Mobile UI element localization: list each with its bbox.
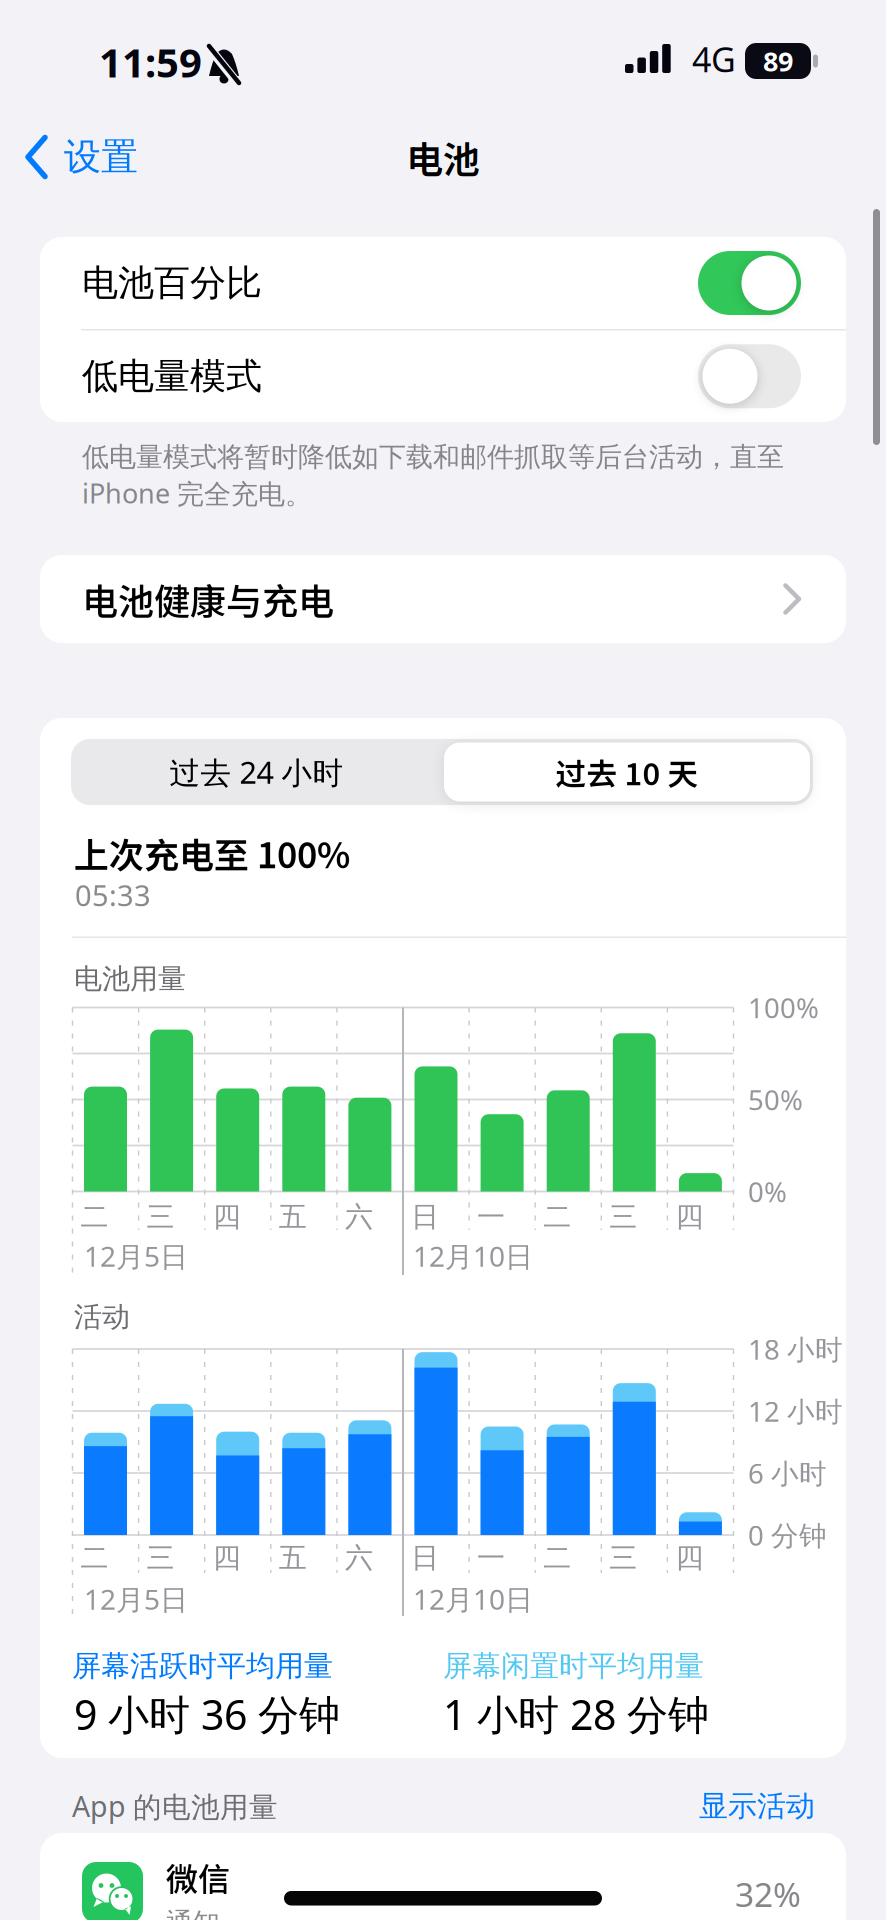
staticText: 四 [675,1541,703,1575]
staticText: iPhone 完全充电。 [82,475,312,511]
staticText: 日 [411,1541,439,1575]
staticText: 6 小时 [748,1455,827,1491]
staticText: 活动 [74,1300,130,1334]
staticText: 12月10日 [413,1580,533,1618]
staticText: 屏幕闲置时平均用量 [443,1648,704,1684]
staticText: 过去 24 小时 [169,752,343,792]
button[interactable]: 过去 10 天 [444,742,810,801]
staticText: 1 小时 28 分钟 [443,1687,709,1741]
staticText: 低电量模式将暂时降低如下载和邮件抓取等后台活动，直至 [82,440,784,474]
staticText: 12月5日 [84,1237,188,1275]
button[interactable]: 设置 [25,133,138,181]
staticText: 89 [763,43,793,79]
staticText: 日 [411,1200,439,1234]
staticText: 32% [735,1872,801,1916]
staticText: App 的电池用量 [72,1787,278,1825]
staticText: 三 [609,1541,637,1575]
staticText: 电池百分比 [82,261,262,305]
staticText: 屏幕活跃时平均用量 [72,1648,333,1684]
staticText: 二 [80,1200,108,1234]
staticText: 9 小时 36 分钟 [74,1687,340,1741]
staticText: 0% [748,1173,787,1210]
staticText: 二 [80,1541,108,1575]
staticText: 六 [345,1200,373,1234]
button[interactable]: 微信 [40,1833,846,1920]
button[interactable]: 电池健康与充电 [40,555,846,643]
staticText: 0 分钟 [748,1517,827,1553]
staticText: 微信 [166,1854,230,1900]
staticText: 上次充电至 100% [74,828,350,878]
staticText: 通知 [166,1906,220,1920]
staticText: 50% [748,1081,803,1118]
staticText: 三 [147,1541,175,1575]
button[interactable]: 电池百分比 [40,237,846,329]
staticText: 一 [477,1200,505,1234]
staticText: 六 [345,1541,373,1575]
staticText: 11:59 [99,35,202,88]
staticText: 四 [675,1200,703,1234]
staticText: 电池健康与充电 [82,574,334,624]
staticText: 4G [692,36,736,82]
staticText: 二 [543,1200,571,1234]
staticText: 100% [748,989,819,1026]
staticText: 一 [477,1541,505,1575]
staticText: 05:33 [75,876,151,914]
staticText: 显示活动 [699,1788,815,1824]
staticText: 12月5日 [84,1580,188,1618]
staticText: 低电量模式 [82,354,262,398]
staticText: 设置 [64,134,138,180]
staticText: 三 [147,1200,175,1234]
staticText: 五 [279,1200,307,1234]
staticText: 过去 10 天 [555,750,698,794]
button[interactable]: 低电量模式 [40,330,846,422]
staticText: 二 [543,1541,571,1575]
staticText: 18 小时 [748,1331,843,1367]
staticText: 电池 [406,131,480,183]
staticText: 五 [279,1541,307,1575]
staticText: 12月10日 [413,1237,533,1275]
button[interactable]: 显示活动 [655,1787,815,1825]
button[interactable]: 过去 24 小时 [71,739,442,805]
staticText: 四 [213,1541,241,1575]
staticText: 四 [213,1200,241,1234]
staticText: 三 [609,1200,637,1234]
staticText: 电池用量 [74,962,186,996]
staticText: 12 小时 [748,1393,843,1429]
